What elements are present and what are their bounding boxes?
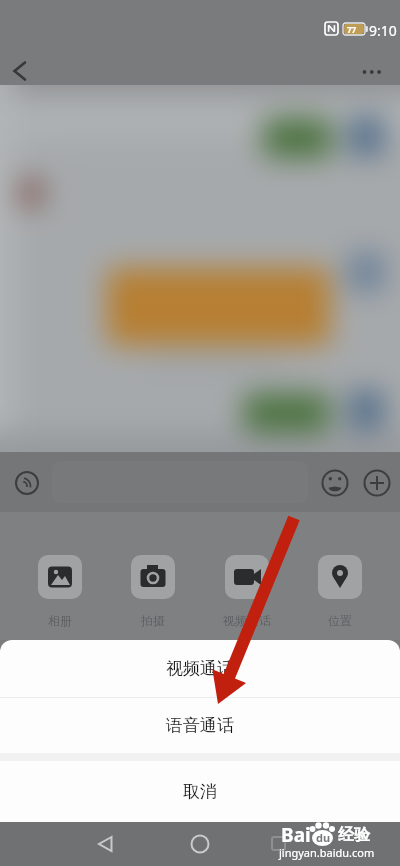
staticText: 语音通话 [166,715,234,736]
staticText: 视频通话 [223,613,271,628]
button[interactable]: 拍摄 [109,512,197,628]
staticText: 经验 [338,825,370,845]
staticText: 9:10 [369,21,397,40]
staticText: 相册 [48,613,72,628]
staticText: 77 [347,24,357,35]
button[interactable]: 相册 [16,512,104,628]
button[interactable]: 语音通话 [0,698,400,753]
staticText: du [316,830,331,845]
staticText: jingyan.baidu.com [279,845,375,860]
staticText: 位置 [328,613,352,628]
button[interactable]: 取消 [0,761,400,822]
button[interactable]: 视频通话 [0,640,400,697]
staticText: 取消 [183,781,217,802]
staticText: 拍摄 [141,613,165,628]
staticText: Bai [281,822,311,848]
button[interactable]: 视频通话 [203,512,291,628]
staticText: 视频通话 [166,658,234,679]
button[interactable]: 位置 [296,512,384,628]
